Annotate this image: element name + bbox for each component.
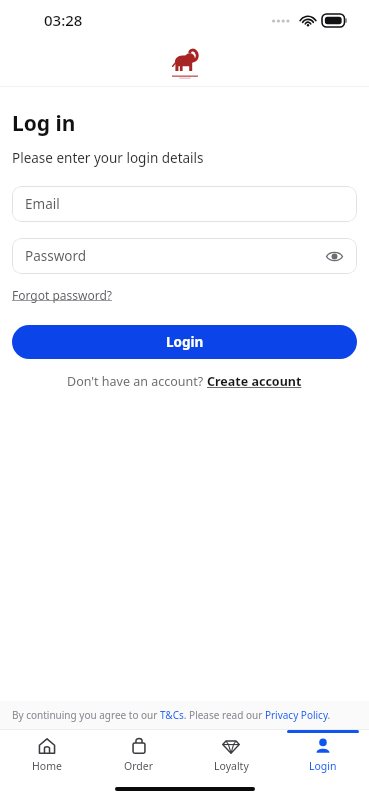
staticText: Please enter your login details	[12, 149, 204, 167]
staticText: Log in	[12, 109, 76, 138]
staticText: 03:28	[44, 10, 83, 30]
staticText: Login	[309, 759, 337, 773]
staticText: By continuing you agree to our T&Cs. Ple…	[12, 708, 331, 722]
button[interactable]: Loyalty	[185, 730, 277, 778]
button[interactable]: Don't have an account?	[67, 373, 302, 390]
button[interactable]: Login	[277, 730, 369, 778]
staticText: Don't have an account?	[67, 373, 207, 390]
staticText: Forgot password?	[12, 287, 113, 303]
staticText: Order	[124, 759, 154, 773]
staticText: Loyalty	[214, 759, 249, 773]
button[interactable]: Forgot password?	[12, 287, 113, 303]
staticText: Login	[166, 333, 204, 351]
staticText: Home	[32, 759, 62, 773]
button[interactable]: Password	[12, 238, 357, 274]
button[interactable]: Order	[93, 730, 185, 778]
button[interactable]: Home	[0, 730, 93, 778]
button[interactable]: Email	[12, 186, 357, 222]
staticText: Create account	[207, 373, 302, 390]
staticText: Password	[25, 247, 87, 265]
button[interactable]: Login	[12, 325, 357, 359]
button[interactable]: Show password	[323, 245, 345, 267]
staticText: Email	[25, 195, 60, 213]
